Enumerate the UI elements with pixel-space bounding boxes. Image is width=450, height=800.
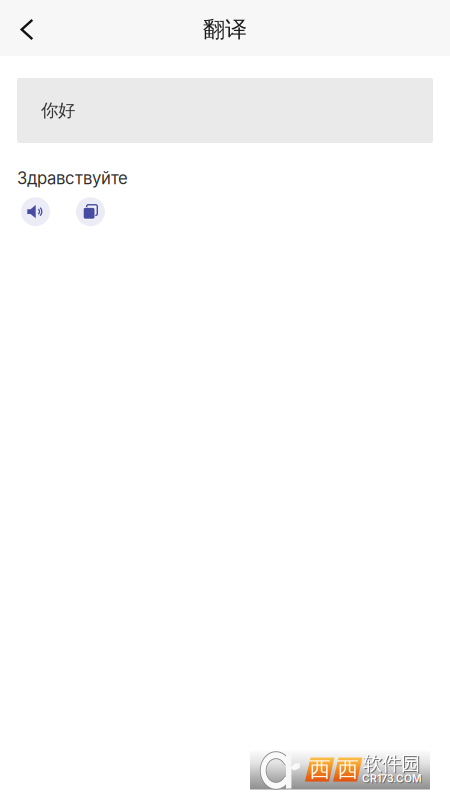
staticText: CR173.COM (362, 772, 422, 785)
staticText: 翻译 (203, 16, 247, 43)
staticText: 你好 (41, 100, 75, 121)
staticText: CR173.COM (363, 773, 423, 786)
staticText: 西 (337, 756, 358, 783)
staticText: 西 (309, 756, 330, 783)
staticText: 软件园 (364, 752, 421, 777)
button[interactable]: Play pronunciation (21, 197, 50, 226)
staticText: 软件园 (363, 751, 420, 776)
button[interactable]: Back (5, 7, 49, 51)
button[interactable]: Copy translation (76, 197, 105, 226)
staticText: Здравствуйте (17, 168, 128, 188)
